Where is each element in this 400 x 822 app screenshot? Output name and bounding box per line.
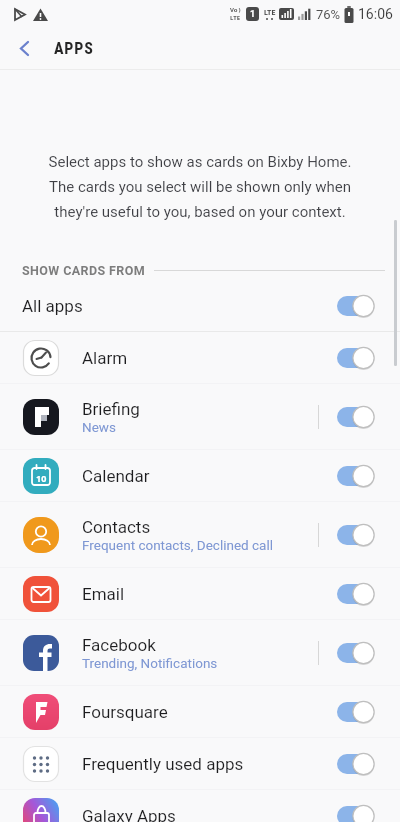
button[interactable] (337, 751, 375, 777)
button[interactable]: Facebook (0, 620, 400, 686)
staticText: Alarm (82, 348, 128, 368)
staticText: Facebook (82, 635, 156, 655)
button[interactable] (337, 404, 375, 430)
button[interactable] (337, 463, 375, 489)
staticText: 1 (250, 9, 256, 20)
staticText: LTE (264, 8, 276, 17)
button[interactable]: Briefing (0, 384, 400, 450)
staticText: 16:06 (358, 6, 393, 22)
staticText: Select apps to show as cards on Bixby Ho… (20, 153, 380, 220)
button[interactable]: Foursquare (0, 686, 400, 738)
staticText: Frequent contacts, Declined call (82, 537, 274, 553)
staticText: Briefing (82, 399, 140, 419)
button[interactable]: 10 (0, 450, 400, 502)
button[interactable] (337, 640, 375, 666)
button[interactable]: Frequently used apps (0, 738, 400, 790)
staticText: APPS (54, 39, 94, 58)
staticText: News (82, 419, 116, 435)
staticText: All apps (22, 296, 83, 316)
button[interactable]: Email (0, 568, 400, 620)
button[interactable] (337, 293, 375, 319)
button[interactable]: Alarm (0, 332, 400, 384)
staticText: 76% (316, 7, 341, 22)
staticText: Calendar (82, 466, 150, 486)
button[interactable] (337, 699, 375, 725)
button[interactable] (337, 345, 375, 371)
button[interactable]: Galaxy Apps (0, 790, 400, 822)
staticText: Trending, Notifications (82, 655, 218, 671)
staticText: Vo ) (230, 6, 241, 14)
staticText: Frequently used apps (82, 754, 244, 774)
staticText: Foursquare (82, 702, 168, 722)
staticText: Email (82, 584, 125, 604)
staticText: Galaxy Apps (82, 806, 176, 822)
staticText: LTE (230, 14, 241, 22)
button[interactable] (337, 803, 375, 822)
button[interactable]: All apps (0, 280, 400, 332)
button[interactable] (18, 40, 32, 57)
staticText: SHOW CARDS FROM (22, 263, 146, 278)
button[interactable]: Contacts (0, 502, 400, 568)
staticText: Contacts (82, 517, 151, 537)
staticText: 10 (36, 472, 47, 484)
button[interactable] (337, 581, 375, 607)
button[interactable] (337, 522, 375, 548)
